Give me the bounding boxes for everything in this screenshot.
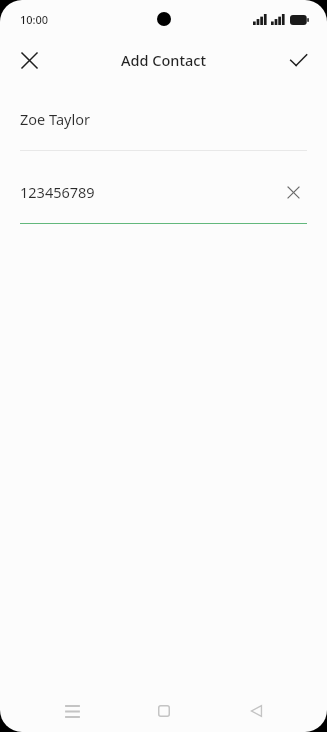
staticText: Zoe Taylor xyxy=(20,109,90,129)
button[interactable]: Recent apps xyxy=(51,690,93,732)
button[interactable]: Close xyxy=(11,42,47,78)
button[interactable]: Save contact xyxy=(280,42,316,78)
staticText: 10:00 xyxy=(20,12,49,27)
button[interactable]: Clear text xyxy=(280,179,306,205)
staticText: 123456789 xyxy=(20,182,95,202)
button[interactable]: Back xyxy=(235,690,277,732)
button[interactable]: Zoe Taylor xyxy=(0,104,327,151)
button[interactable]: 123456789 xyxy=(0,177,327,224)
button[interactable]: Home xyxy=(143,690,185,732)
staticText: Add Contact xyxy=(121,50,206,70)
